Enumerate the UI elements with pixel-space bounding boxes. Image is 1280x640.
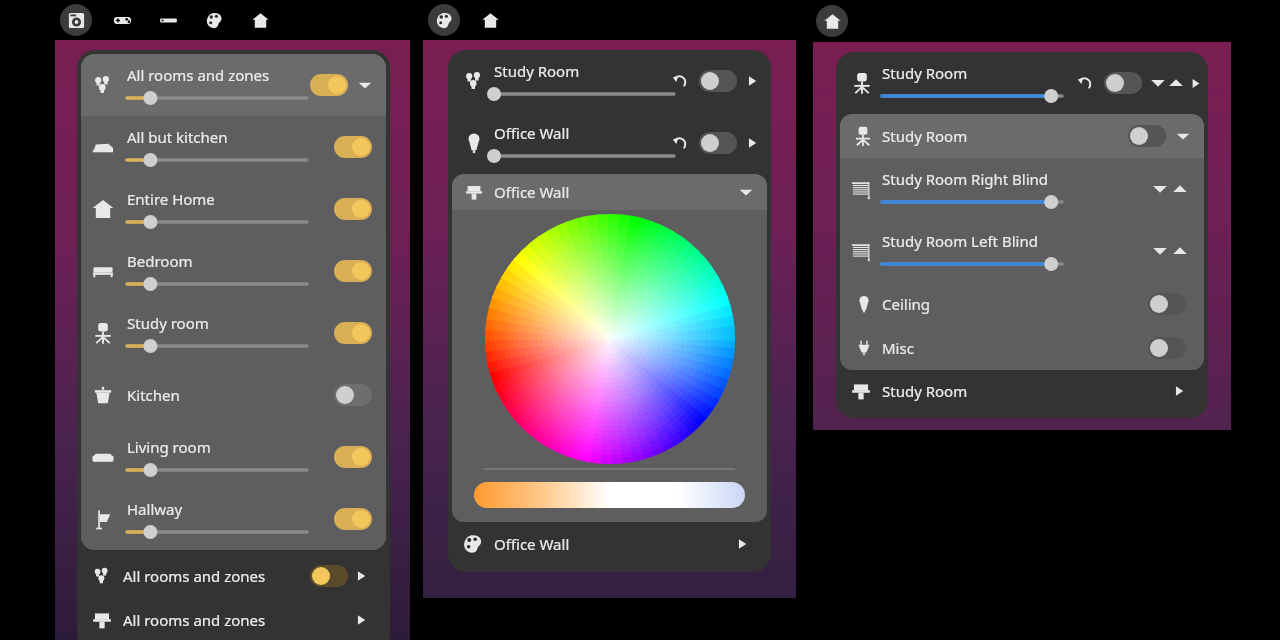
button[interactable]: Study Room xyxy=(836,370,1208,412)
button[interactable]: Office Wall xyxy=(448,112,771,174)
staticText: Study Room xyxy=(882,126,968,146)
button[interactable]: Down xyxy=(1152,181,1168,197)
button[interactable]: Ceiling xyxy=(840,282,1204,326)
button[interactable]: Toggle xyxy=(1148,293,1186,315)
button[interactable]: Down xyxy=(1150,75,1166,91)
staticText: Study room xyxy=(127,313,209,333)
button[interactable]: Study room xyxy=(81,302,386,364)
button[interactable]: Entire Home xyxy=(81,178,386,240)
button[interactable]: Open xyxy=(354,613,368,627)
staticText: Office Wall xyxy=(494,534,570,554)
button[interactable]: Toggle xyxy=(310,74,348,96)
button[interactable]: Undo xyxy=(671,134,689,152)
staticText: Bedroom xyxy=(127,251,193,271)
button[interactable]: Palette xyxy=(198,4,230,36)
button[interactable]: Toggle xyxy=(1148,337,1186,359)
button[interactable]: All rooms and zones xyxy=(81,54,386,116)
button[interactable]: Open xyxy=(745,136,759,150)
button[interactable]: Study Room xyxy=(448,50,771,112)
button[interactable]: Study Room xyxy=(840,114,1204,158)
button[interactable]: Home xyxy=(816,5,848,37)
button[interactable]: Toggle xyxy=(334,508,372,530)
staticText: Office Wall xyxy=(494,182,570,202)
button[interactable]: Remote xyxy=(152,4,184,36)
staticText: Study Room xyxy=(882,63,968,83)
button[interactable]: Toggle xyxy=(699,70,737,92)
staticText: Study Room xyxy=(494,61,580,81)
button[interactable]: Toggle xyxy=(334,384,372,406)
button[interactable]: Misc xyxy=(840,326,1204,370)
button[interactable]: Appliances xyxy=(60,4,92,36)
button[interactable]: Toggle xyxy=(334,446,372,468)
button[interactable]: Toggle xyxy=(1104,72,1142,94)
button[interactable]: All but kitchen xyxy=(81,116,386,178)
staticText: Kitchen xyxy=(127,385,180,405)
button[interactable]: Expand xyxy=(356,76,374,94)
staticText: All rooms and zones xyxy=(123,610,266,630)
button[interactable]: Bedroom xyxy=(81,240,386,302)
button[interactable]: Kitchen xyxy=(81,364,386,426)
staticText: Office Wall xyxy=(494,123,570,143)
button[interactable]: Toggle xyxy=(334,136,372,158)
button[interactable]: Open xyxy=(745,74,759,88)
button[interactable]: Study Room Right Blind xyxy=(840,158,1204,220)
button[interactable]: Color temperature xyxy=(474,482,745,508)
staticText: Entire Home xyxy=(127,189,215,209)
staticText: All but kitchen xyxy=(127,127,228,147)
button[interactable]: Palette xyxy=(428,4,460,36)
staticText: Hallway xyxy=(127,499,183,519)
staticText: Study Room Right Blind xyxy=(882,169,1049,189)
button[interactable]: All rooms and zones xyxy=(77,598,390,640)
button[interactable]: Undo xyxy=(1076,74,1094,92)
button[interactable]: Games xyxy=(106,4,138,36)
button[interactable]: Toggle xyxy=(334,322,372,344)
button[interactable]: Up xyxy=(1168,75,1184,91)
staticText: All rooms and zones xyxy=(123,566,266,586)
button[interactable]: Study Room Left Blind xyxy=(840,220,1204,282)
button[interactable]: All rooms and zones xyxy=(77,554,390,598)
button[interactable]: Toggle xyxy=(699,132,737,154)
staticText: Living room xyxy=(127,437,211,457)
button[interactable]: Office Wall xyxy=(452,174,767,210)
button[interactable]: Toggle xyxy=(1128,125,1166,147)
button[interactable]: Home xyxy=(474,4,506,36)
button[interactable]: Living room xyxy=(81,426,386,488)
button[interactable]: Undo xyxy=(671,72,689,90)
button[interactable]: Open xyxy=(1189,77,1202,90)
button[interactable]: Toggle xyxy=(334,260,372,282)
button[interactable]: Up xyxy=(1172,243,1188,259)
button[interactable]: Down xyxy=(1152,243,1168,259)
staticText: Study Room xyxy=(882,381,968,401)
staticText: Ceiling xyxy=(882,294,931,314)
button[interactable]: Hallway xyxy=(81,488,386,550)
button[interactable]: Toggle xyxy=(334,198,372,220)
button[interactable]: Office Wall xyxy=(448,522,771,566)
staticText: All rooms and zones xyxy=(127,65,270,85)
button[interactable]: Study Room xyxy=(836,52,1208,114)
button[interactable]: Open xyxy=(354,569,368,583)
button[interactable]: Toggle xyxy=(310,565,348,587)
button[interactable]: Home xyxy=(244,4,276,36)
button[interactable]: Up xyxy=(1172,181,1188,197)
staticText: Study Room Left Blind xyxy=(882,231,1038,251)
staticText: Misc xyxy=(882,338,914,358)
